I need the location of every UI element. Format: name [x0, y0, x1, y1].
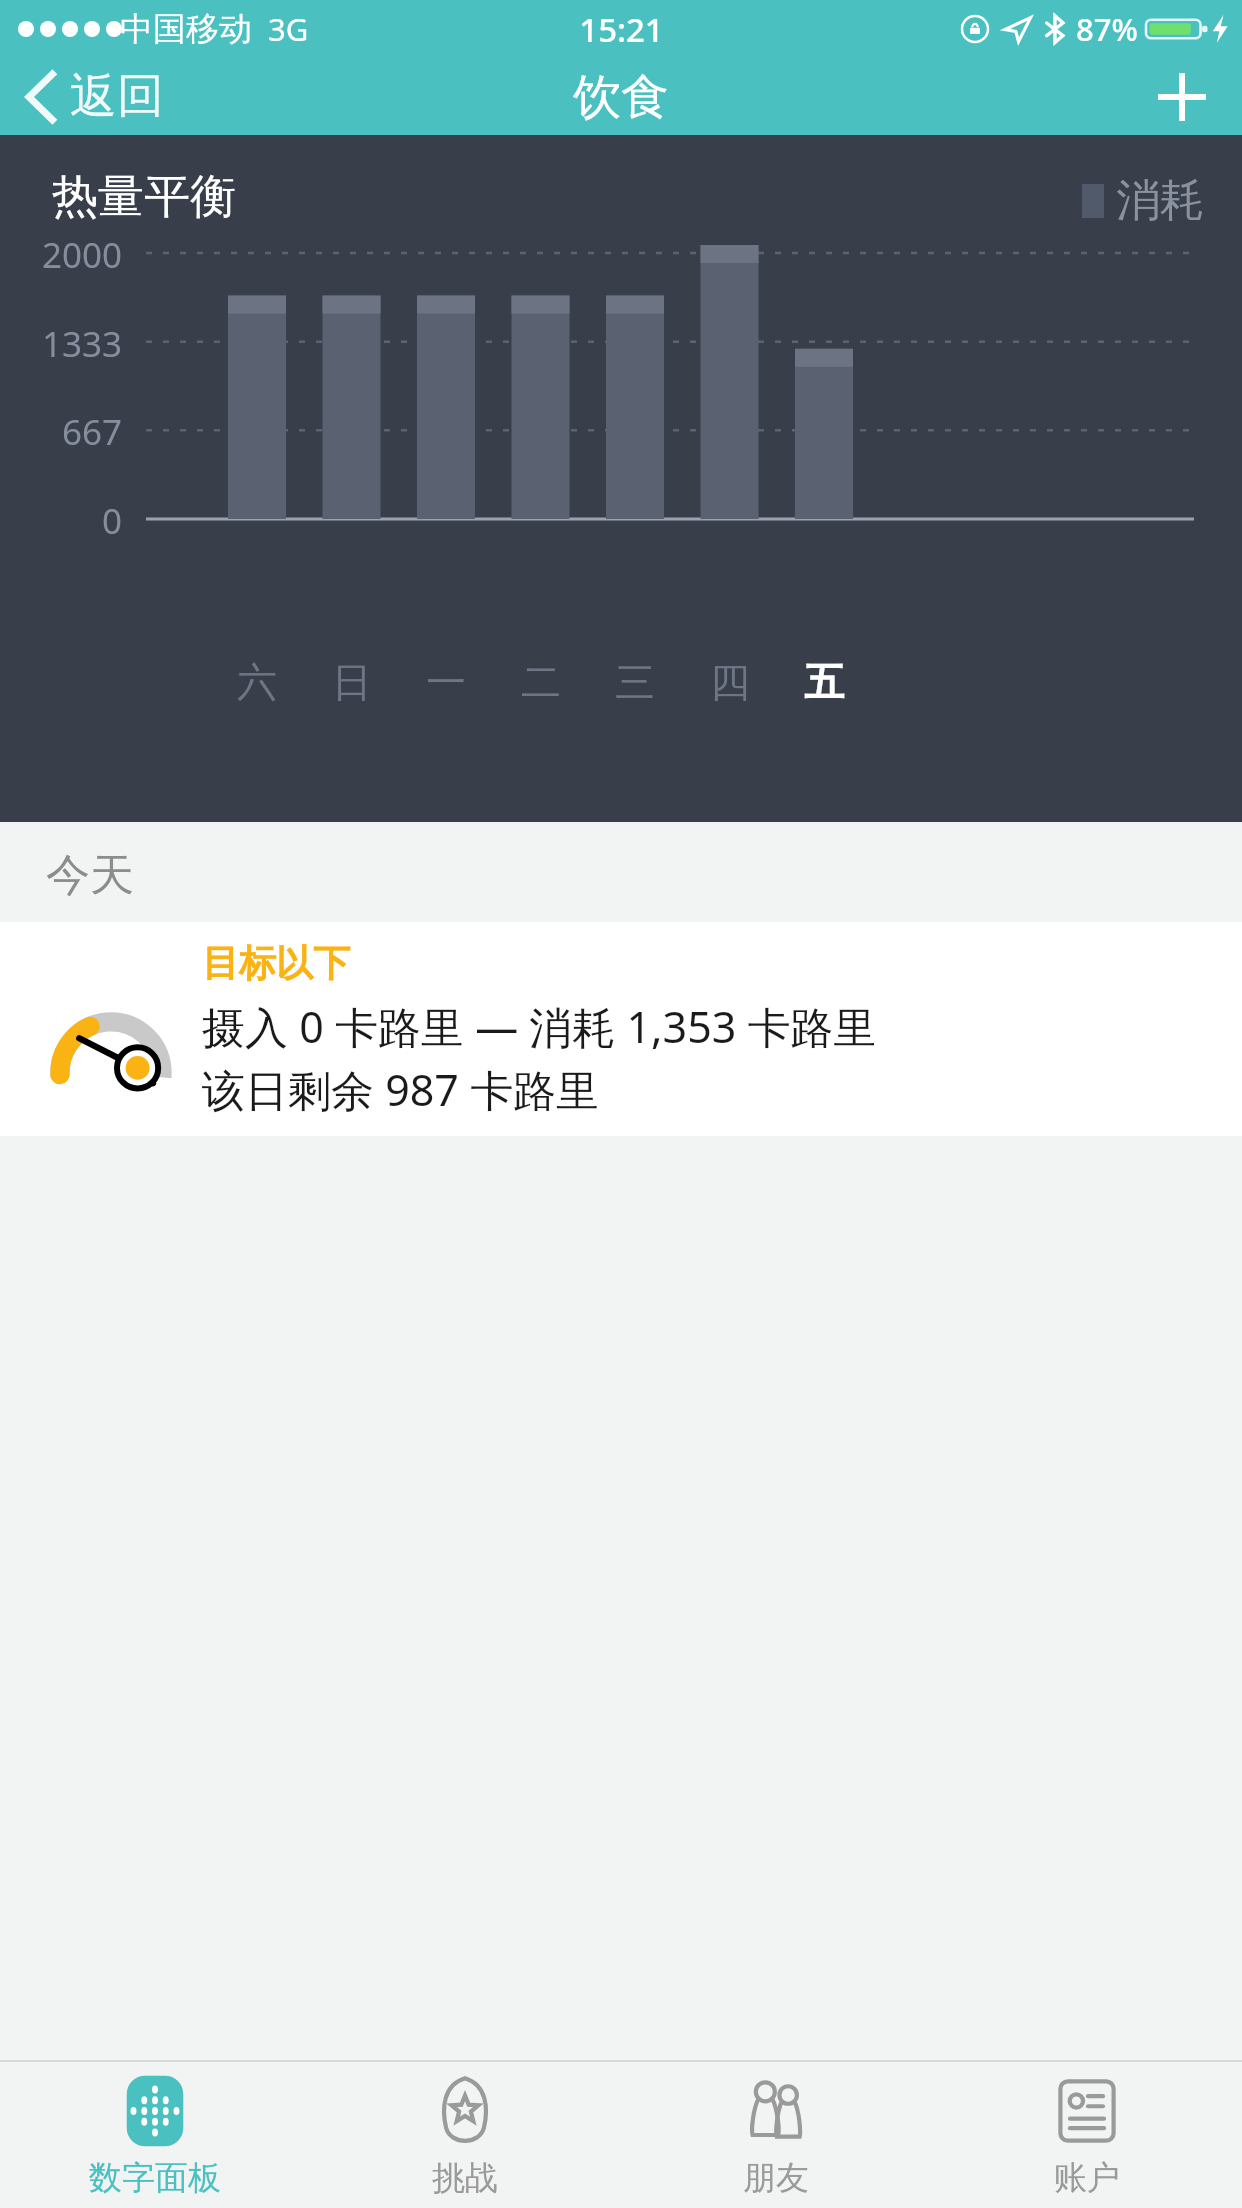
staticText: 返回	[70, 67, 164, 126]
staticText: 3G	[268, 8, 309, 50]
staticText: 0	[101, 497, 122, 545]
staticText: 日	[332, 657, 372, 707]
staticText: 今天	[46, 848, 134, 903]
staticText: 中国移动	[120, 8, 252, 50]
staticText: 目标以下	[202, 940, 350, 987]
staticText: 1333	[41, 320, 122, 368]
button[interactable]: 数字面板	[0, 2062, 310, 2208]
button[interactable]: Add	[1122, 58, 1242, 135]
staticText: 87%	[1076, 8, 1138, 50]
staticText: 六	[237, 657, 277, 707]
button[interactable]: 目标以下	[0, 922, 1242, 1136]
button[interactable]: 返回	[0, 58, 188, 135]
staticText: 摄入 0 卡路里 — 消耗 1,353 卡路里	[202, 997, 877, 1056]
button[interactable]: 挑战	[310, 2062, 620, 2208]
button[interactable]: 账户	[931, 2062, 1242, 2208]
staticText: 四	[710, 657, 750, 707]
staticText: 饮食	[573, 67, 669, 127]
staticText: 五	[804, 657, 844, 707]
staticText: 该日剩余 987 卡路里	[202, 1060, 600, 1119]
staticText: 二	[521, 657, 561, 707]
button[interactable]: 朋友	[620, 2062, 931, 2208]
staticText: 数字面板	[89, 2157, 221, 2199]
staticText: 消耗	[1116, 173, 1204, 228]
staticText: 热量平衡	[52, 168, 236, 226]
staticText: 15:21	[579, 7, 664, 52]
staticText: 朋友	[743, 2157, 809, 2199]
staticText: 三	[615, 657, 655, 707]
staticText: 挑战	[432, 2157, 498, 2199]
staticText: 2000	[41, 231, 122, 279]
staticText: 账户	[1054, 2157, 1120, 2199]
staticText: 一	[426, 657, 466, 707]
staticText: 667	[61, 408, 122, 456]
